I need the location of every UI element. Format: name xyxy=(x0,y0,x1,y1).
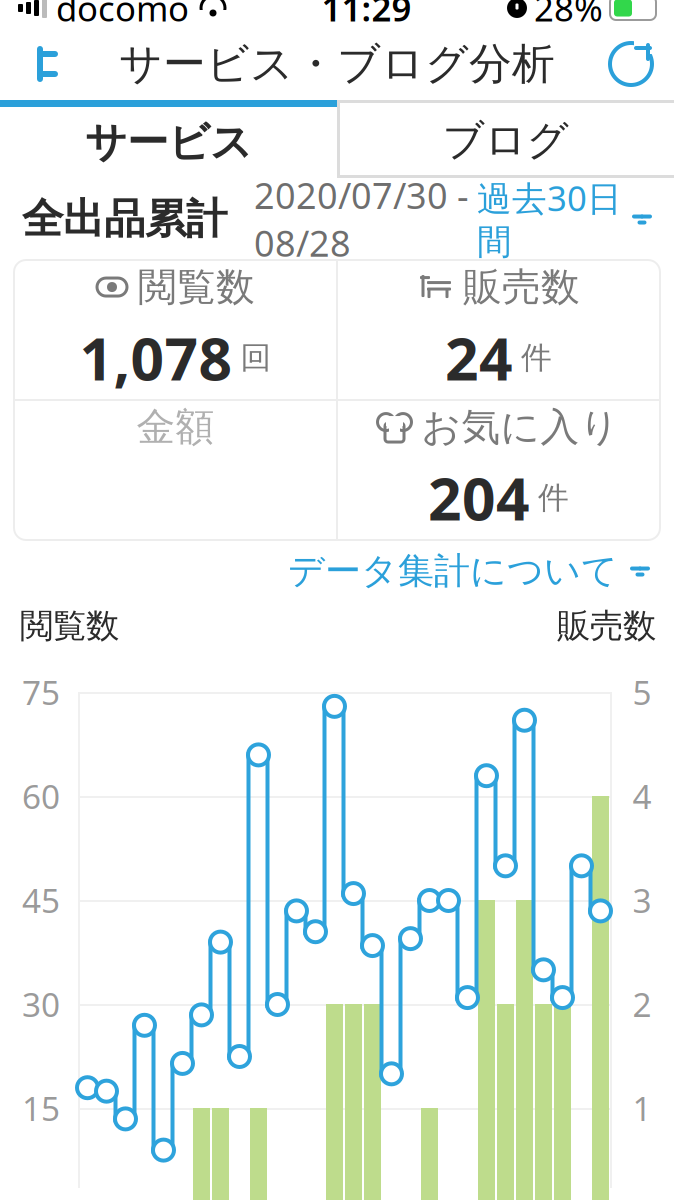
staticText: 15 xyxy=(22,1086,60,1130)
staticText: 45 xyxy=(22,878,60,922)
staticText: 75 xyxy=(22,670,60,714)
staticText: サービス xyxy=(85,117,252,168)
button[interactable]: データ集計について xyxy=(288,549,654,593)
button[interactable]: サービス xyxy=(0,100,337,178)
staticText: 2020/07/30 - 08/28 xyxy=(254,171,469,267)
staticText: 2 xyxy=(632,982,651,1026)
staticText: 11:29 xyxy=(321,0,411,31)
staticText: 閲覧数 xyxy=(20,605,119,646)
staticText: ブログ xyxy=(442,115,568,166)
staticText: 過去30日間 xyxy=(477,175,622,263)
button[interactable]: 更新 xyxy=(600,31,662,97)
staticText: 件 xyxy=(538,479,569,517)
button[interactable]: 過去30日間 xyxy=(469,175,656,263)
staticText: 30 xyxy=(22,982,60,1026)
staticText: 1 xyxy=(632,1086,651,1130)
staticText: 金額 xyxy=(136,403,214,451)
staticText: 回 xyxy=(240,339,271,377)
staticText: 閲覧数 xyxy=(138,263,255,311)
button[interactable]: ブログ xyxy=(337,100,674,178)
staticText: 5 xyxy=(632,670,651,714)
staticText: 1,078 xyxy=(79,319,232,397)
staticText: 3 xyxy=(632,878,651,922)
staticText: 全出品累計 xyxy=(22,194,227,244)
button[interactable]: 戻る xyxy=(12,31,74,97)
staticText: 204 xyxy=(428,459,530,537)
staticText: docomo xyxy=(56,0,189,31)
staticText: 4 xyxy=(632,774,651,818)
staticText: データ集計について xyxy=(288,549,618,593)
staticText: サービス・ブログ分析 xyxy=(119,38,555,90)
staticText: 60 xyxy=(22,774,60,818)
staticText: 24 xyxy=(445,319,513,397)
staticText: 販売数 xyxy=(463,263,580,311)
staticText: 28% xyxy=(534,0,603,31)
staticText: お気に入り xyxy=(421,403,619,451)
staticText: 件 xyxy=(521,339,552,377)
staticText: 販売数 xyxy=(557,605,656,646)
